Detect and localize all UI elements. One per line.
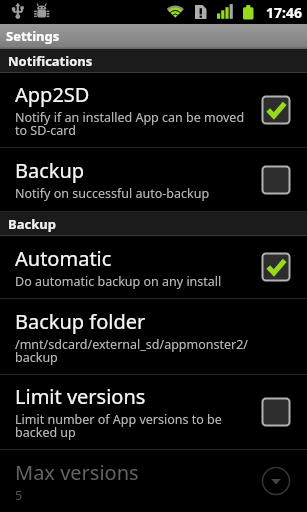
staticText: Automatic [15,245,112,272]
staticText: Limit versions [15,383,146,410]
button[interactable]: Checked [261,252,291,282]
staticText: 5 [15,487,23,504]
staticText: 17:46 [266,3,302,22]
staticText: Notify if an installed App can be moved … [15,109,252,139]
button[interactable]: Unchecked [261,397,291,427]
button[interactable]: Automatic [0,236,307,298]
button[interactable]: Backup [0,148,307,211]
staticText: App2SD [15,81,90,108]
staticText: Max versions [15,459,139,486]
staticText: Settings [6,27,60,45]
staticText: Backup folder [15,308,146,335]
button[interactable]: Unchecked [261,165,291,195]
staticText: Do automatic backup on any install [15,273,222,290]
button[interactable]: Limit versions [0,375,307,449]
staticText: Notify on successful auto-backup [15,185,210,202]
button[interactable]: Max versions [0,450,307,512]
staticText: Limit number of App versions to be backe… [15,411,252,441]
staticText: Notifications [8,52,93,70]
staticText: /mnt/sdcard/external_sd/appmonster2/back… [15,336,263,366]
button[interactable]: Expand Max versions [261,466,291,496]
staticText: Backup [15,157,85,184]
button[interactable]: App2SD [0,73,307,147]
button[interactable]: Settings [0,24,307,49]
button[interactable]: Backup folder [0,299,307,374]
button[interactable]: Checked [261,95,291,125]
staticText: Backup [8,215,56,233]
